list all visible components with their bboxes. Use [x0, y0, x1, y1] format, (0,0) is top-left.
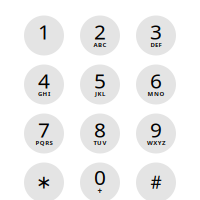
- staticText: 9: [150, 115, 162, 144]
- staticText: MNO: [148, 90, 164, 98]
- button[interactable]: 4: [24, 64, 64, 104]
- button[interactable]: 3: [136, 15, 176, 55]
- button[interactable]: #: [136, 162, 176, 200]
- button[interactable]: 9: [136, 113, 176, 153]
- staticText: ∗: [36, 171, 52, 193]
- staticText: ABC: [94, 41, 106, 49]
- staticText: 4: [38, 66, 50, 95]
- staticText: PQRS: [35, 139, 53, 147]
- staticText: 1: [38, 17, 50, 46]
- staticText: 6: [150, 66, 162, 95]
- staticText: WXYZ: [147, 139, 165, 147]
- button[interactable]: 8: [80, 113, 120, 153]
- staticText: 2: [94, 17, 106, 46]
- staticText: 5: [94, 66, 106, 95]
- staticText: GHI: [38, 90, 50, 98]
- button[interactable]: 1: [24, 15, 64, 55]
- button[interactable]: 2: [80, 15, 120, 55]
- button[interactable]: ∗: [24, 162, 64, 200]
- button[interactable]: 5: [80, 64, 120, 104]
- staticText: JKL: [95, 90, 105, 98]
- staticText: TUV: [94, 139, 106, 147]
- staticText: 3: [150, 17, 162, 46]
- staticText: 8: [94, 115, 106, 144]
- staticText: 0: [94, 163, 106, 191]
- staticText: 7: [38, 115, 50, 144]
- staticText: +: [97, 186, 102, 196]
- button[interactable]: 7: [24, 113, 64, 153]
- staticText: DEF: [151, 41, 161, 49]
- button[interactable]: 6: [136, 64, 176, 104]
- staticText: #: [150, 170, 161, 194]
- button[interactable]: 0 plus: [80, 162, 120, 200]
